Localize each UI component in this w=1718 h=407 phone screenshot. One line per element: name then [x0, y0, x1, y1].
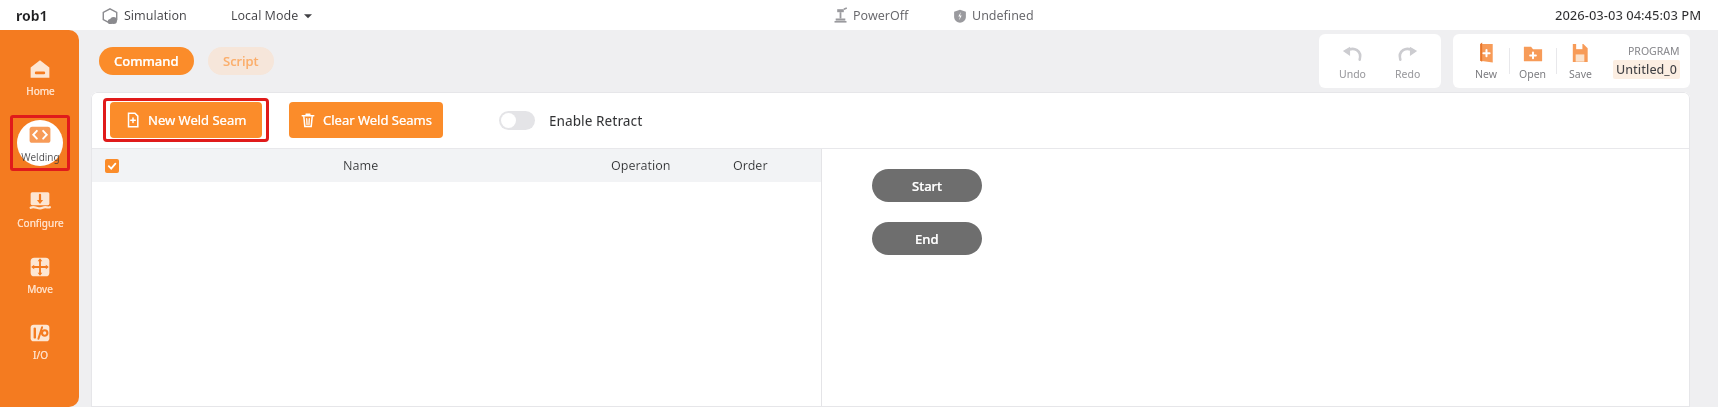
staticText: Untitled_0 — [1616, 61, 1677, 78]
button[interactable]: Open — [1510, 39, 1556, 83]
staticText: Clear Weld Seams — [323, 111, 432, 129]
button[interactable]: Redo — [1385, 39, 1431, 83]
button[interactable]: End — [872, 222, 982, 255]
button[interactable]: Local Mode — [231, 7, 312, 24]
staticText: 2026-03-03 04:45:03 PM — [1555, 6, 1702, 24]
staticText: Name — [343, 157, 379, 174]
staticText: Redo — [1395, 67, 1421, 81]
staticText: Command — [114, 52, 179, 70]
button[interactable]: Simulation — [102, 7, 187, 24]
button[interactable]: Enable Retract — [499, 111, 643, 130]
staticText: Welding — [21, 150, 60, 164]
button[interactable] — [105, 159, 119, 173]
staticText: I/O — [33, 348, 48, 362]
button[interactable]: I/O — [12, 317, 68, 365]
staticText: Save — [1569, 67, 1592, 81]
button[interactable]: PowerOff — [833, 7, 909, 24]
button[interactable]: New — [1463, 39, 1509, 83]
staticText: Home — [26, 84, 55, 98]
button[interactable]: Move — [12, 251, 68, 299]
button[interactable]: Clear Weld Seams — [289, 102, 443, 138]
button[interactable]: New Weld Seam — [110, 102, 262, 138]
staticText: End — [915, 230, 939, 248]
button[interactable]: Script — [208, 47, 274, 75]
staticText: Order — [733, 157, 768, 174]
button[interactable]: Command — [99, 47, 194, 75]
button[interactable]: Undo — [1329, 39, 1375, 83]
staticText: Undefined — [972, 7, 1034, 24]
button[interactable]: Undefined — [953, 7, 1034, 24]
button[interactable]: Save — [1557, 39, 1603, 83]
staticText: PROGRAM — [1628, 44, 1680, 58]
staticText: Configure — [17, 216, 64, 230]
staticText: New — [1475, 67, 1497, 81]
staticText: rob1 — [16, 6, 48, 25]
staticText: New Weld Seam — [148, 111, 247, 129]
staticText: Open — [1519, 67, 1547, 81]
staticText: Move — [27, 282, 53, 296]
staticText: Undo — [1339, 67, 1366, 81]
button[interactable]: Configure — [12, 185, 68, 233]
staticText: PowerOff — [853, 7, 909, 24]
staticText: Local Mode — [231, 7, 299, 24]
staticText: Operation — [611, 157, 671, 174]
button[interactable]: Start — [872, 169, 982, 202]
button[interactable]: Home — [12, 53, 68, 101]
staticText: Simulation — [124, 7, 187, 24]
staticText: Script — [223, 52, 259, 70]
staticText: Start — [912, 177, 943, 195]
button[interactable]: Welding — [17, 119, 63, 167]
staticText: Enable Retract — [549, 112, 643, 130]
